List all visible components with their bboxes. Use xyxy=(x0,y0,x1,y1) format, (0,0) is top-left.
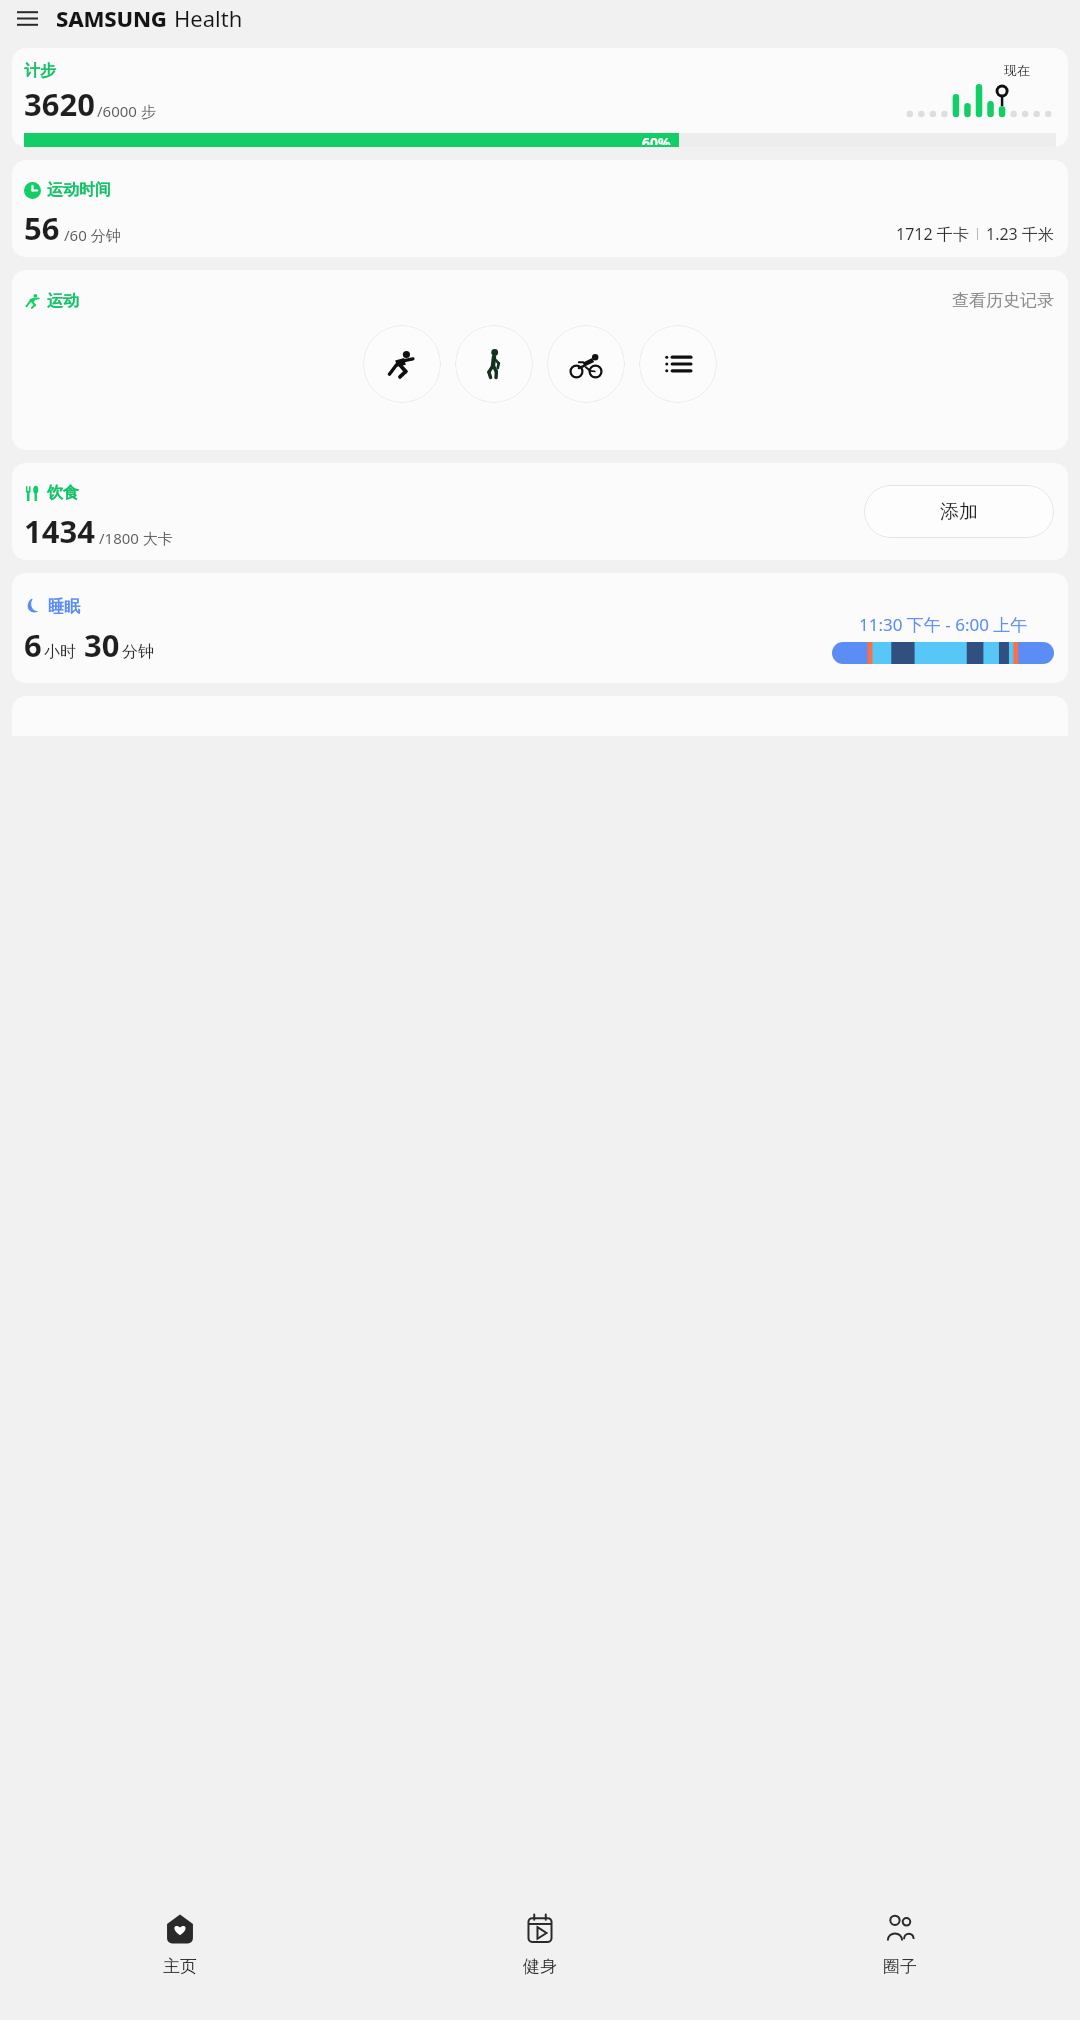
staticText: 60% xyxy=(642,133,671,145)
staticText: /1800 大卡 xyxy=(99,528,173,548)
button[interactable]: 查看历史记录 xyxy=(952,290,1054,311)
staticText: SAMSUNG xyxy=(56,3,167,33)
staticText: Health xyxy=(174,3,243,33)
staticText: 56 xyxy=(24,207,60,249)
button[interactable]: 添加 xyxy=(864,485,1054,538)
staticText: 1.23 千米 xyxy=(986,223,1054,245)
staticText: 运动时间 xyxy=(47,180,111,200)
staticText: 11:30 下午 - 6:00 上午 xyxy=(859,613,1028,636)
button[interactable]: 睡眠 xyxy=(12,573,1068,683)
staticText: 添加 xyxy=(940,500,978,524)
button[interactable]: 计步 xyxy=(12,48,1068,147)
button[interactable]: 运动时间 xyxy=(12,160,1068,257)
staticText: 6 xyxy=(24,624,42,666)
button[interactable]: 运动 xyxy=(12,270,1068,450)
button[interactable]: 健身 xyxy=(360,1868,720,2020)
button[interactable]: Cycle xyxy=(547,325,625,403)
button[interactable]: 饮食 xyxy=(12,463,1068,560)
button[interactable]: Walk xyxy=(455,325,533,403)
staticText: /6000 步 xyxy=(97,101,156,121)
staticText: 计步 xyxy=(24,61,56,81)
staticText: 分钟 xyxy=(122,642,154,662)
button[interactable]: 圈子 xyxy=(720,1868,1080,2020)
staticText: 1712 千卡 xyxy=(896,223,969,245)
staticText: 3620 xyxy=(24,83,95,125)
staticText: 睡眠 xyxy=(48,597,80,617)
staticText: 健身 xyxy=(523,1956,557,1977)
staticText: 30 xyxy=(84,624,120,666)
staticText: 1434 xyxy=(24,510,95,552)
staticText: /60 分钟 xyxy=(64,225,121,245)
button[interactable]: More xyxy=(639,325,717,403)
button[interactable]: Run xyxy=(363,325,441,403)
staticText: 主页 xyxy=(163,1956,197,1977)
staticText: 小时 xyxy=(44,642,76,662)
staticText: 现在 xyxy=(1004,62,1030,78)
staticText: 运动 xyxy=(47,291,79,311)
button[interactable]: 主页 xyxy=(0,1868,360,2020)
staticText: 饮食 xyxy=(47,483,79,503)
button[interactable]: Menu xyxy=(12,3,42,33)
staticText: 圈子 xyxy=(883,1956,917,1977)
